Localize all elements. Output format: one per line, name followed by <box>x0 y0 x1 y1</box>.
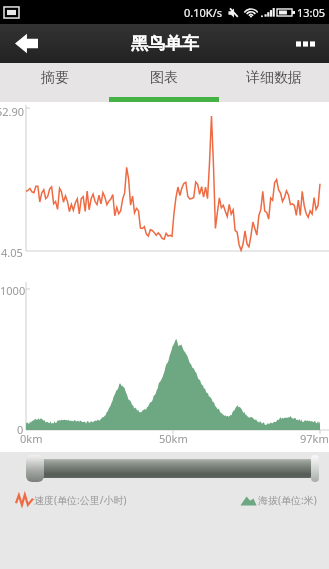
staticText: 1000 <box>0 283 26 298</box>
button[interactable]: 详细数据 <box>219 63 329 102</box>
staticText: 0.10K/s <box>184 5 222 20</box>
button[interactable]: 图表 <box>109 63 219 102</box>
staticText: 海拔(单位:米) <box>258 493 317 507</box>
staticText: 52.90 <box>0 104 25 119</box>
staticText: 97km <box>300 431 329 446</box>
button[interactable]: 摘要 <box>0 63 109 102</box>
button[interactable]: Back <box>0 24 50 63</box>
staticText: 图表 <box>150 69 178 87</box>
staticText: 13:05 <box>297 5 326 20</box>
staticText: 0km <box>20 431 43 446</box>
staticText: 黑鸟单车 <box>131 33 199 54</box>
staticText: 摘要 <box>41 69 69 87</box>
button[interactable]: More options <box>285 24 329 63</box>
staticText: 50km <box>159 431 188 446</box>
staticText: 详细数据 <box>246 69 302 87</box>
staticText: 4.05 <box>1 245 23 260</box>
button[interactable]: Distance range <box>0 452 329 485</box>
staticText: 0 <box>17 422 24 437</box>
staticText: 速度(单位:公里/小时) <box>34 493 127 507</box>
